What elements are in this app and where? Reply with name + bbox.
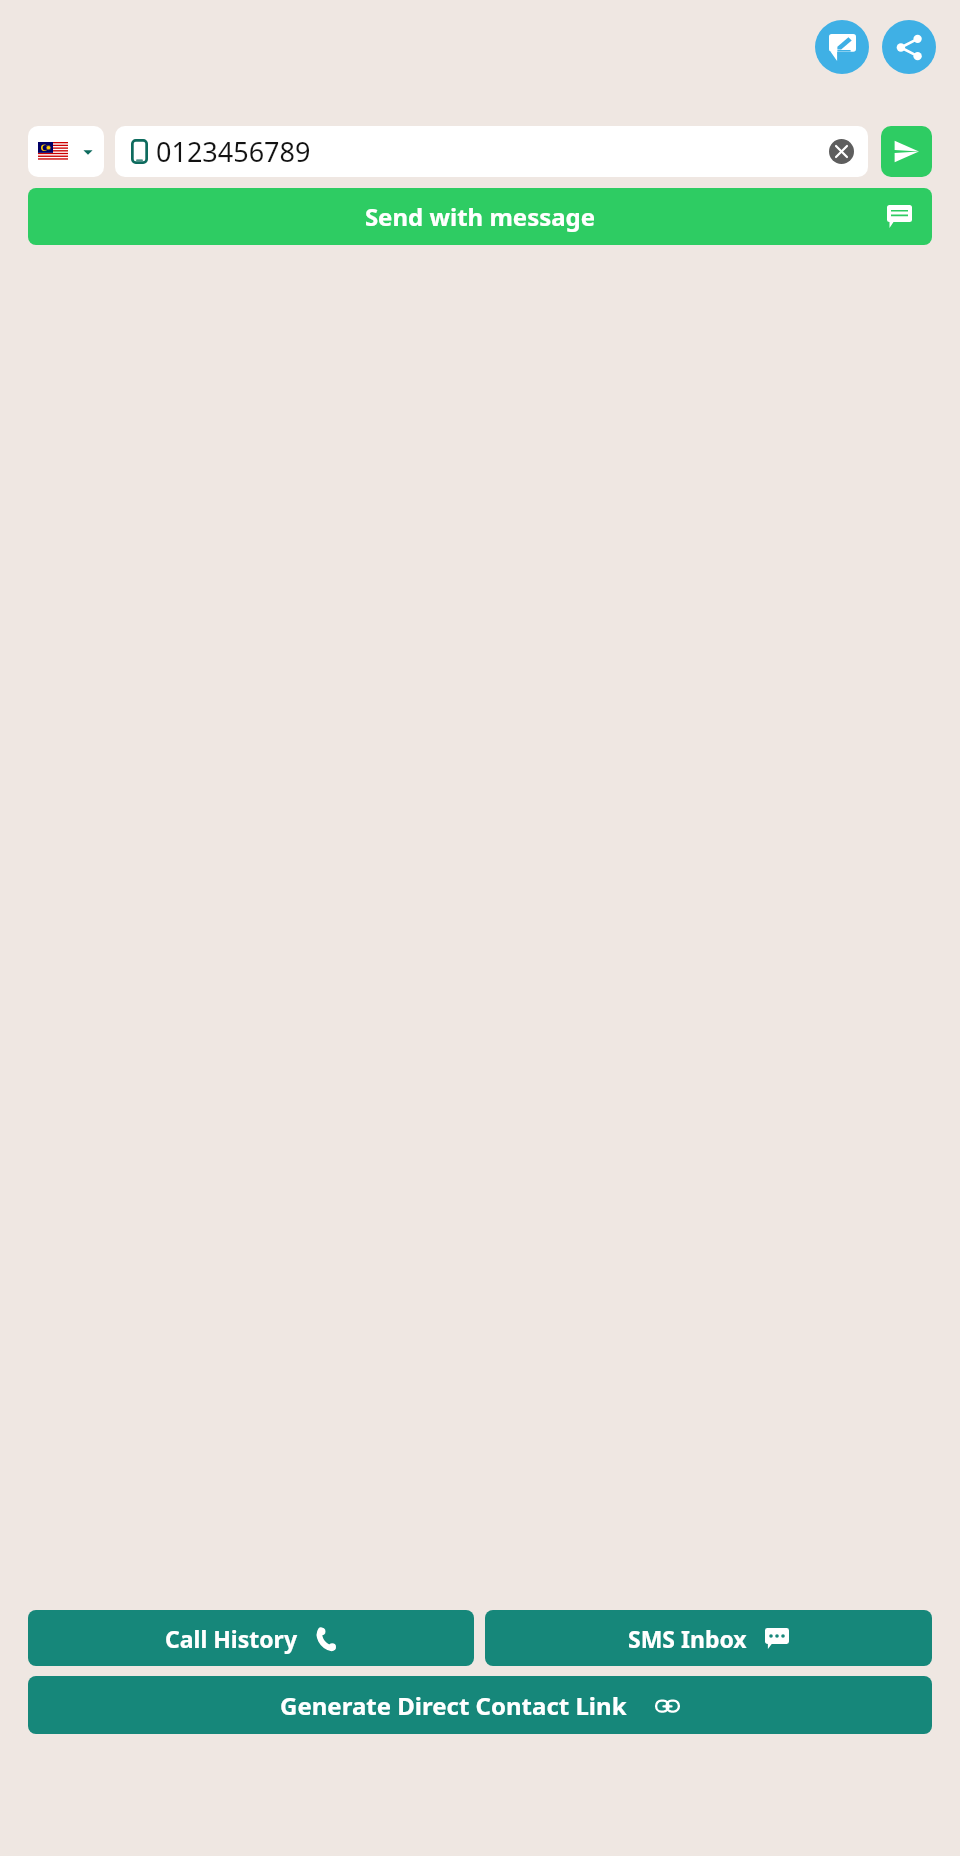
- button[interactable]: Send with message: [28, 188, 932, 245]
- button[interactable]: Compose message: [815, 20, 869, 74]
- staticText: Send with message: [28, 200, 932, 233]
- button[interactable]: Clear: [829, 139, 854, 164]
- button[interactable]: SMS Inbox: [485, 1610, 932, 1666]
- button[interactable]: 0123456789: [115, 126, 868, 177]
- staticText: 0123456789: [156, 133, 829, 170]
- button[interactable]: [28, 126, 104, 177]
- staticText: SMS Inbox: [628, 1623, 747, 1654]
- staticText: Call History: [165, 1623, 298, 1654]
- button[interactable]: Share: [882, 20, 936, 74]
- button[interactable]: Generate Direct Contact Link: [28, 1676, 932, 1734]
- button[interactable]: Send: [881, 126, 932, 177]
- staticText: Generate Direct Contact Link: [280, 1689, 627, 1722]
- button[interactable]: Call History: [28, 1610, 474, 1666]
